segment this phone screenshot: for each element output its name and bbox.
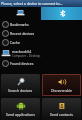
staticText: Send applications — [6, 112, 35, 117]
button[interactable]: macbook64 — [0, 47, 82, 59]
button[interactable]: Discoverable — [42, 74, 81, 96]
staticText: Found devices — [10, 61, 34, 66]
button[interactable]: Send applications — [1, 98, 40, 120]
staticText: Search devices — [8, 88, 33, 93]
staticText: Please, select a device to connect to... — [1, 1, 63, 6]
staticText: Bookmarks — [10, 22, 29, 27]
staticText: Cache — [10, 40, 20, 45]
button[interactable]: Please, select a device to connect to... — [0, 0, 82, 7]
staticText: Discoverable — [51, 88, 72, 93]
button[interactable]: Recent devices — [0, 29, 82, 38]
button[interactable]: Found devices — [0, 59, 82, 68]
button[interactable]: Send contacts — [42, 98, 81, 120]
other: Bluetooth — [59, 10, 66, 17]
staticText: Computer - Desktop — [12, 54, 41, 58]
button[interactable]: Bookmarks — [0, 20, 82, 29]
button[interactable]: Cache — [0, 38, 82, 47]
staticText: macbook64 — [12, 49, 32, 54]
staticText: Send contacts — [50, 112, 73, 117]
button[interactable]: Search devices — [1, 74, 40, 96]
staticText: Recent devices — [10, 31, 35, 36]
